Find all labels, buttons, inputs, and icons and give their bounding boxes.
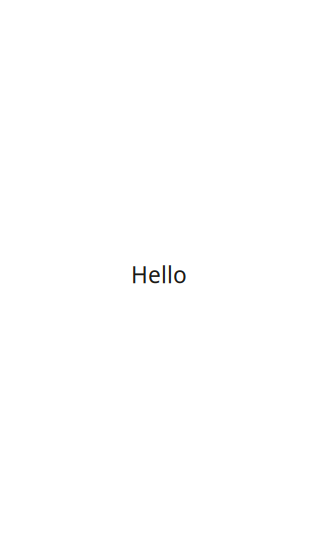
- staticText: Hello: [131, 259, 187, 289]
